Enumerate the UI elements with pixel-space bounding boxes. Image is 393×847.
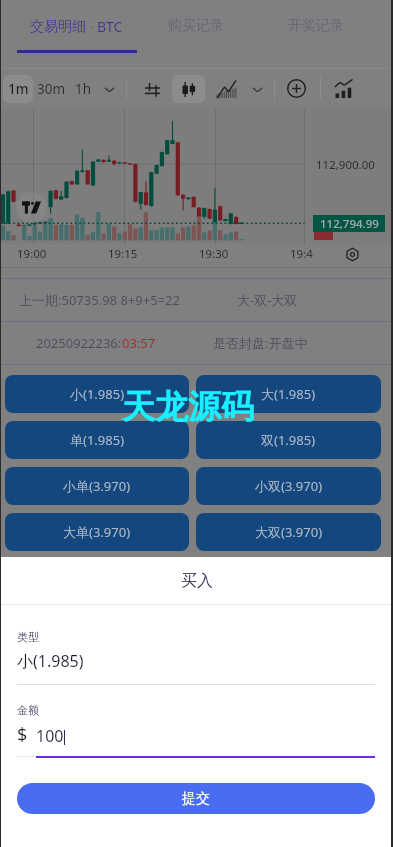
button[interactable]: 小双(3.970) xyxy=(196,467,381,505)
staticText: 单(1.985) xyxy=(70,431,125,449)
button[interactable]: 大单(3.970) xyxy=(5,513,189,551)
staticText: 购买记录 xyxy=(168,17,224,35)
staticText: 20250922236: xyxy=(36,334,122,352)
button[interactable]: Settings xyxy=(343,245,362,264)
staticText: 双(1.985) xyxy=(261,431,316,449)
staticText: 小双(3.970) xyxy=(255,477,323,495)
staticText: 19:30 xyxy=(199,246,229,262)
staticText: 30m xyxy=(37,80,66,98)
staticText: 大-双-大双 xyxy=(237,291,298,309)
staticText: 1h xyxy=(75,80,92,98)
staticText: 小(1.985) xyxy=(17,650,84,672)
button[interactable]: More intervals xyxy=(99,77,119,101)
staticText: 100 xyxy=(36,725,64,747)
staticText: 112,794.99 xyxy=(320,216,379,232)
button[interactable]: Add indicator xyxy=(283,75,310,102)
button[interactable]: Chart analysis xyxy=(330,75,357,102)
staticText: 上一期:50735.98 8+9+5=22 xyxy=(19,291,180,309)
staticText: 交易明细 xyxy=(30,18,86,36)
button[interactable]: 1m xyxy=(3,75,33,103)
staticText: 开奖记录 xyxy=(288,17,344,35)
staticText: 买入 xyxy=(181,571,213,591)
staticText: 19:4 xyxy=(290,246,313,262)
staticText: 112,900.00 xyxy=(316,157,375,173)
staticText: 1m xyxy=(8,80,29,98)
button[interactable]: 小(1.985) xyxy=(5,375,189,413)
button[interactable]: 提交 xyxy=(17,783,375,814)
staticText: 小单(3.970) xyxy=(63,477,131,495)
staticText: 小(1.985) xyxy=(70,385,125,403)
button[interactable]: 开奖记录 xyxy=(256,0,376,53)
button[interactable]: 30m xyxy=(36,75,67,103)
button[interactable]: 大(1.985) xyxy=(196,375,381,413)
staticText: 03:57 xyxy=(122,334,156,352)
button[interactable]: 购买记录 xyxy=(136,0,256,53)
staticText: 大单(3.970) xyxy=(63,523,131,541)
button[interactable]: Candle chart xyxy=(172,75,205,103)
button[interactable]: 大双(3.970) xyxy=(196,513,381,551)
staticText: 天龙源码 xyxy=(122,386,254,428)
staticText: 提交 xyxy=(182,790,210,808)
button[interactable]: 双(1.985) xyxy=(196,421,381,459)
button[interactable]: 1h xyxy=(72,75,94,103)
staticText: BTC xyxy=(97,17,123,36)
staticText: 19:15 xyxy=(108,246,138,262)
button[interactable]: 单(1.985) xyxy=(5,421,189,459)
staticText: $ xyxy=(17,722,28,747)
button[interactable]: Indicators xyxy=(138,75,166,103)
staticText: 大(1.985) xyxy=(261,385,316,403)
staticText: 类型 xyxy=(17,630,39,644)
staticText: 19:00 xyxy=(17,246,47,262)
button[interactable]: Line chart xyxy=(212,75,240,103)
staticText: 金额 xyxy=(17,703,39,717)
staticText: 大双(3.970) xyxy=(255,523,323,541)
staticText: 是否封盘:开盘中 xyxy=(213,334,308,352)
button[interactable]: 小单(3.970) xyxy=(5,467,189,505)
button[interactable]: More chart types xyxy=(247,77,267,101)
button[interactable]: 交易明细 xyxy=(16,0,136,53)
